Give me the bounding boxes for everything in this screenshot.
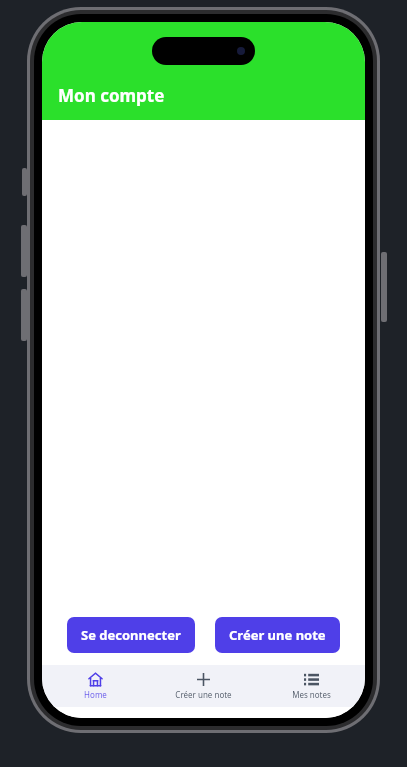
- staticText: Mes notes: [292, 689, 331, 700]
- staticText: Home: [84, 689, 107, 700]
- staticText: Créer une note: [175, 689, 232, 700]
- button[interactable]: Home: [42, 665, 149, 707]
- button[interactable]: Créer une note: [149, 665, 257, 707]
- staticText: Mon compte: [58, 84, 165, 107]
- staticText: Créer une note: [229, 626, 326, 644]
- button[interactable]: Se deconnecter: [67, 617, 195, 653]
- staticText: Se deconnecter: [81, 626, 181, 644]
- button[interactable]: Mes notes: [257, 665, 365, 707]
- button[interactable]: Créer une note: [215, 617, 340, 653]
